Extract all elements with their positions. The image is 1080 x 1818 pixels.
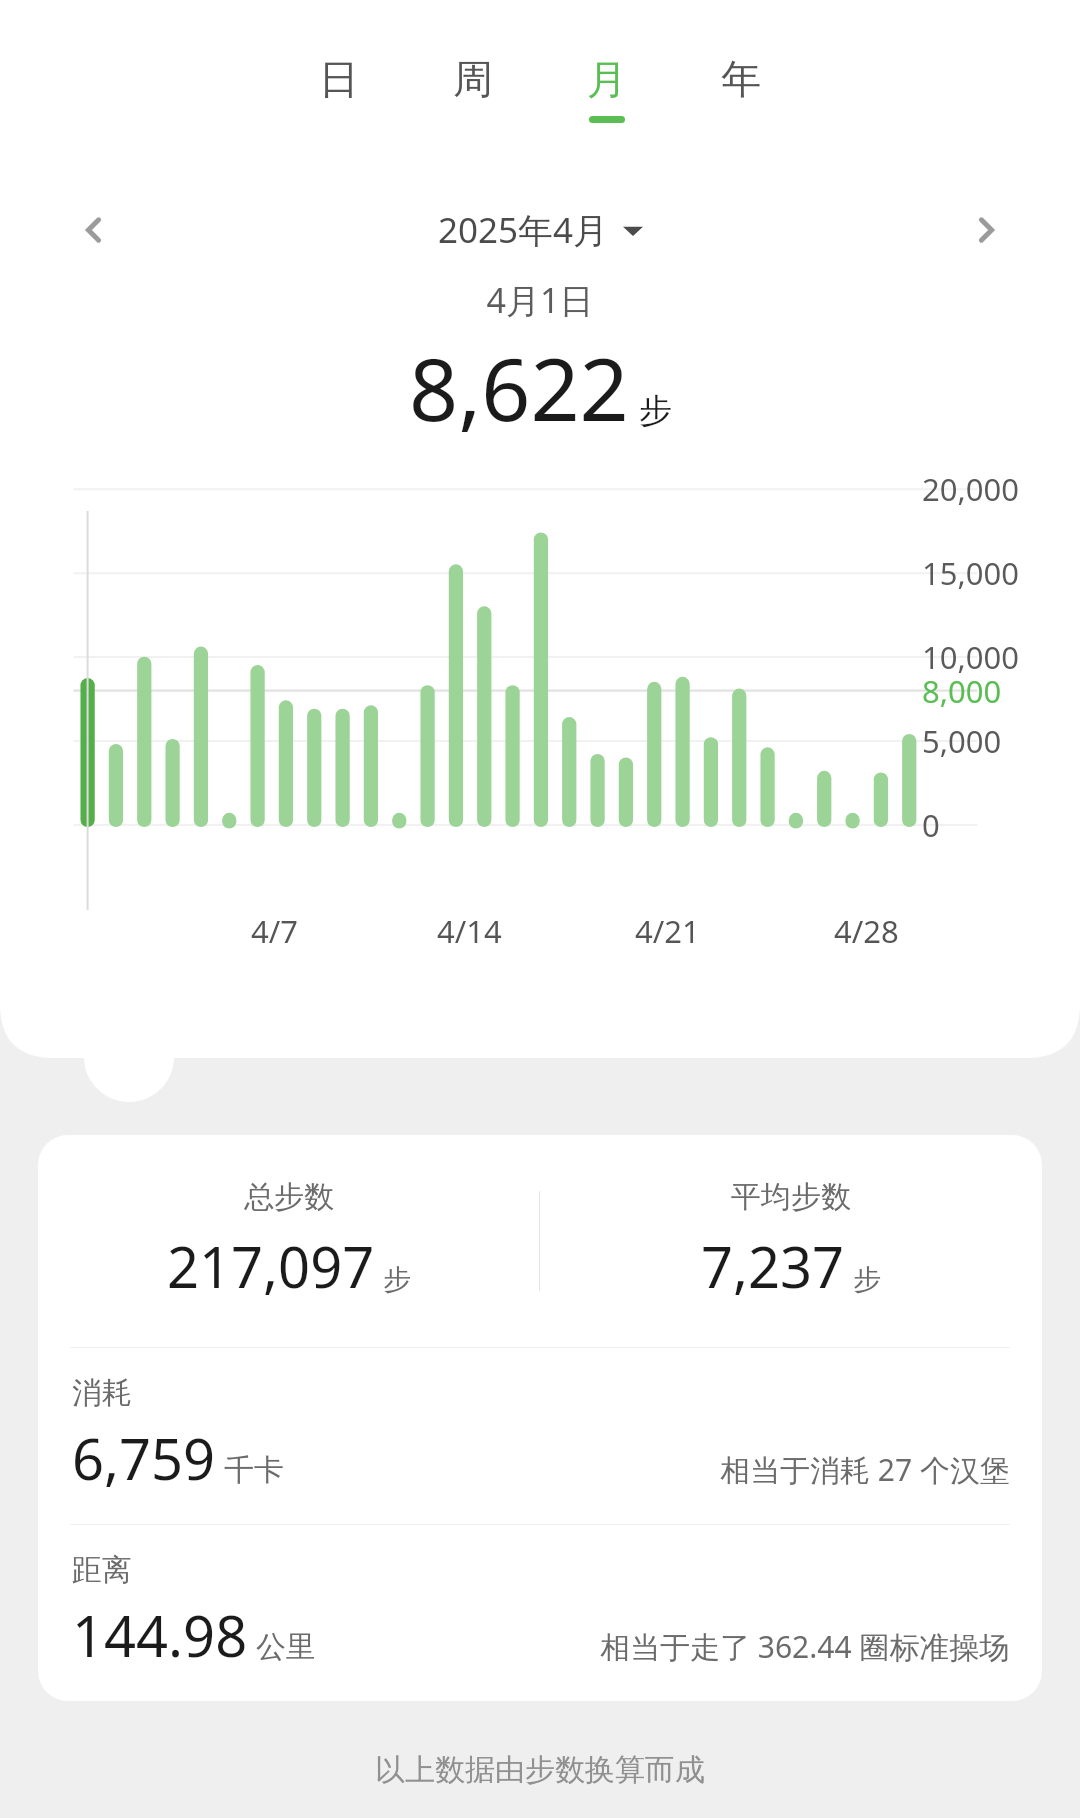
staticText: 144.98: [72, 1597, 248, 1673]
button[interactable]: 年: [709, 50, 773, 127]
staticText: 公里: [256, 1628, 316, 1666]
staticText: 7,237: [701, 1228, 845, 1304]
staticText: 月: [587, 54, 627, 104]
button[interactable]: 平均步数: [540, 1178, 1042, 1304]
staticText: 20,000: [922, 468, 1019, 510]
button[interactable]: 日: [307, 50, 371, 127]
button[interactable]: 周: [441, 50, 505, 127]
staticText: 相当于走了 362.44 圈标准操场: [600, 1626, 1010, 1667]
button[interactable]: Next month: [956, 199, 1018, 261]
staticText: 平均步数: [731, 1178, 851, 1216]
staticText: 2025年4月: [438, 206, 609, 254]
staticText: 相当于消耗 27 个汉堡: [720, 1449, 1010, 1490]
staticText: 步: [639, 390, 672, 432]
staticText: 步: [383, 1262, 411, 1297]
staticText: 15,000: [922, 552, 1019, 594]
staticText: 年: [721, 54, 761, 104]
button[interactable]: 总步数: [38, 1178, 539, 1304]
staticText: 日: [319, 54, 359, 104]
staticText: 6,759: [72, 1420, 216, 1496]
staticText: 8,622: [409, 329, 629, 446]
staticText: 5,000: [922, 720, 1002, 762]
staticText: 0: [922, 804, 940, 846]
staticText: 以上数据由步数换算而成: [0, 1751, 1080, 1789]
staticText: 4/28: [834, 910, 899, 952]
button[interactable]: 距离: [38, 1525, 1042, 1701]
staticText: 4/7: [251, 910, 298, 952]
staticText: 周: [453, 54, 493, 104]
staticText: 4月1日: [0, 277, 1080, 323]
staticText: 千卡: [224, 1451, 284, 1489]
button[interactable]: 2025年4月: [124, 206, 956, 254]
staticText: 10,000: [922, 636, 1019, 678]
button[interactable]: 消耗: [38, 1348, 1042, 1524]
staticText: 4/14: [437, 910, 502, 952]
button[interactable]: Previous month: [62, 199, 124, 261]
staticText: 距离: [72, 1551, 132, 1589]
staticText: 8,000: [922, 670, 1002, 712]
staticText: 217,097: [167, 1228, 375, 1304]
staticText: 步: [853, 1262, 881, 1297]
staticText: 消耗: [72, 1374, 132, 1412]
staticText: 4/21: [635, 910, 700, 952]
staticText: 总步数: [244, 1178, 334, 1216]
button[interactable]: 月: [575, 50, 639, 127]
